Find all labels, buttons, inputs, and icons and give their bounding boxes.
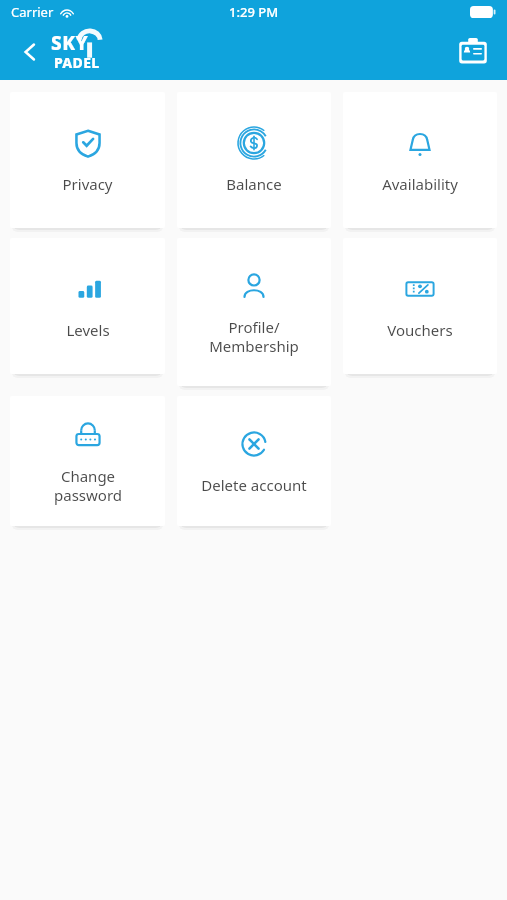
button[interactable]: Vouchers [343,238,497,374]
staticText: PADEL [54,53,100,72]
staticText: Vouchers [387,320,453,340]
button[interactable]: Balance [177,92,331,228]
staticText: Delete account [201,475,307,495]
button[interactable]: Back [8,30,52,74]
staticText: Change password [54,466,122,505]
staticText: Privacy [62,174,113,194]
button[interactable]: Levels [10,238,165,374]
staticText: Profile/ Membership [209,317,299,356]
staticText: Carrier [11,3,54,21]
staticText: SKY [51,30,89,56]
button[interactable]: Profile/ Membership [177,238,331,386]
button[interactable]: Change password [10,396,165,526]
staticText: Balance [226,174,282,194]
staticText: Availability [382,174,458,194]
button[interactable]: Availability [343,92,497,228]
staticText: Levels [66,320,110,340]
button[interactable]: Privacy [10,92,165,228]
button[interactable]: Profile card [451,30,495,74]
staticText: 1:29 PM [229,3,279,21]
button[interactable]: Delete account [177,396,331,526]
